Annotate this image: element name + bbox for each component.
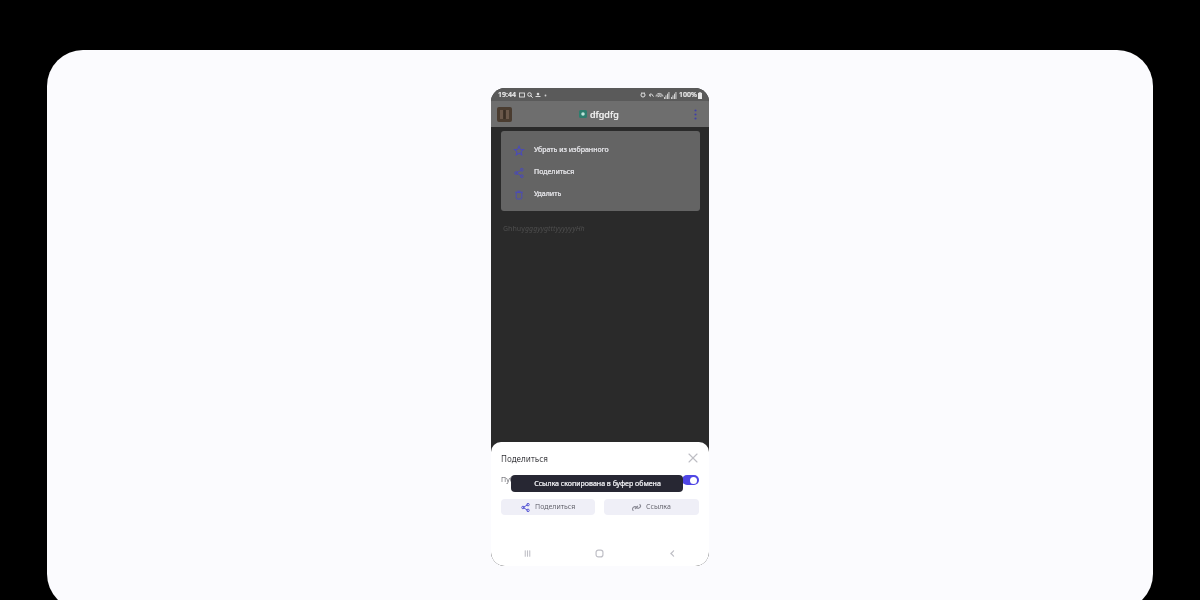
button[interactable]: Публичная ссылка включена [682,475,699,485]
staticText: Публичная ссылка [501,475,565,485]
staticText: gggyygtttyyyyyyHh [525,224,585,234]
button[interactable]: Удалить [501,183,700,205]
staticText: Поделиться [501,453,548,464]
staticText: Удалить [534,189,562,199]
button[interactable]: Ссылка [604,499,699,515]
staticText: Ссылка скопирована в буфер обмена [534,479,661,489]
staticText: Поделиться [535,502,576,512]
button[interactable]: Поделиться [501,499,595,515]
staticText: Убрать из избранного [534,145,609,155]
staticText: 100% [679,90,697,100]
staticText: dfgdfg [590,108,619,120]
staticText: Ghhuy [503,224,525,234]
staticText: Поделиться [534,167,575,177]
button[interactable]: Главный экран [563,540,636,566]
staticText: Ссылка [646,502,671,512]
button[interactable]: Аватар [497,107,512,122]
staticText: text [503,155,516,165]
button[interactable]: Поделиться [501,161,700,183]
button[interactable]: Недавние [491,540,563,566]
button[interactable]: Убрать из избранного [501,139,700,161]
button[interactable]: Ещё [687,106,703,122]
staticText: text [503,193,516,203]
staticText: 19:44 [498,90,516,100]
button[interactable]: Закрыть [687,452,699,464]
staticText: text [503,174,516,184]
button[interactable]: Назад [636,540,709,566]
